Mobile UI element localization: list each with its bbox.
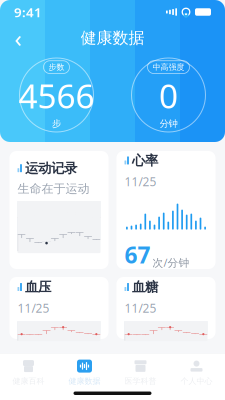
staticText: 健康数据 xyxy=(80,28,144,48)
button[interactable]: 运动记录 xyxy=(9,151,108,269)
button[interactable]: 血压 xyxy=(9,277,108,339)
staticText: 健康百科 xyxy=(12,376,44,386)
staticText: 个人中心 xyxy=(180,376,212,386)
staticText: 健康数据 xyxy=(68,376,100,386)
staticText: 次/分钟 xyxy=(152,255,189,270)
staticText: 生命在于运动 xyxy=(17,181,89,196)
staticText: 67 xyxy=(124,240,150,270)
staticText: 血压 xyxy=(25,279,51,295)
button[interactable]: 医学科普 xyxy=(112,356,168,388)
staticText: 11/25 xyxy=(17,300,49,316)
staticText: 分钟 xyxy=(159,118,177,129)
staticText: 11/25 xyxy=(124,300,156,316)
staticText: 步 xyxy=(52,118,61,129)
staticText: 中高强度 xyxy=(152,62,184,72)
button[interactable]: 个人中心 xyxy=(168,356,224,388)
button[interactable]: 健康百科 xyxy=(0,356,56,388)
button[interactable]: 血糖 xyxy=(116,277,215,339)
staticText: 9:41 xyxy=(14,3,42,21)
staticText: 运动记录 xyxy=(25,160,77,176)
button[interactable]: Back xyxy=(5,25,31,51)
staticText: 医学科普 xyxy=(124,376,156,386)
staticText: 步数 xyxy=(48,62,64,72)
staticText: 4566 xyxy=(18,73,94,118)
button[interactable]: 心率 xyxy=(116,151,215,269)
staticText: 0 xyxy=(159,73,178,118)
staticText: ‹ xyxy=(14,22,21,54)
button[interactable]: 健康数据 xyxy=(56,356,112,388)
staticText: 血糖 xyxy=(132,279,158,295)
staticText: 11/25 xyxy=(124,174,156,190)
staticText: 心率 xyxy=(132,152,158,169)
